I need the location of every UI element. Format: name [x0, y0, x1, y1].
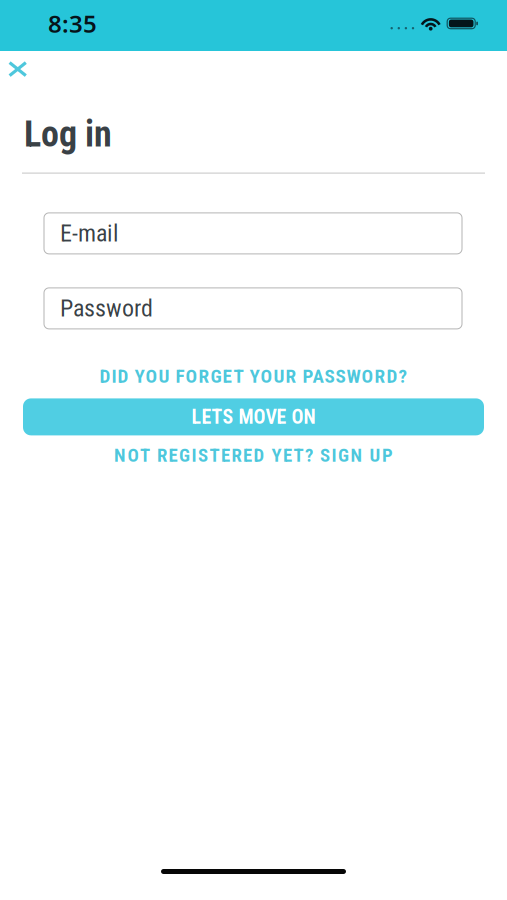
staticText: 8:35 — [48, 8, 97, 39]
button[interactable]: Close — [0, 51, 27, 77]
staticText: NOT REGISTERED YET? SIGN UP — [114, 444, 393, 466]
staticText: LETS MOVE ON — [191, 405, 315, 428]
button[interactable]: NOT REGISTERED YET? SIGN UP — [0, 444, 507, 466]
button[interactable]: DID YOU FORGET YOUR PASSWORD? — [0, 365, 507, 387]
staticText: E-mail — [60, 219, 119, 247]
staticText: Password — [60, 294, 153, 322]
button[interactable]: LETS MOVE ON — [23, 398, 484, 435]
staticText: DID YOU FORGET YOUR PASSWORD? — [99, 365, 407, 387]
staticText: Log in — [24, 113, 112, 155]
